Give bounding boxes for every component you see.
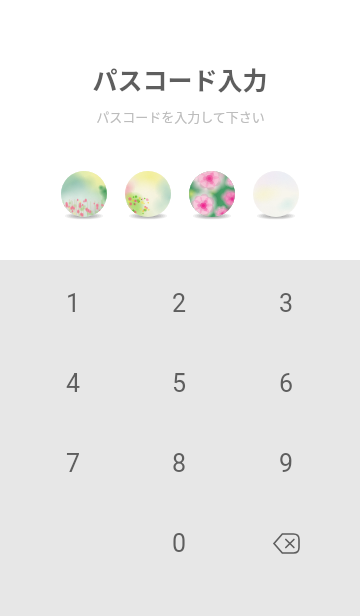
button[interactable]: 6 — [233, 343, 340, 423]
staticText: 9 — [279, 449, 294, 478]
button[interactable]: Backspace — [233, 503, 340, 583]
staticText: パスコード入力 — [92, 61, 268, 97]
button[interactable]: 8 — [126, 423, 233, 503]
staticText: 2 — [172, 289, 187, 318]
staticText: 0 — [172, 529, 187, 558]
staticText: 3 — [279, 289, 294, 318]
staticText: 6 — [279, 369, 294, 398]
staticText: 5 — [172, 369, 187, 398]
staticText: 4 — [66, 369, 81, 398]
button[interactable]: 4 — [20, 343, 126, 423]
button[interactable]: 0 — [126, 503, 233, 583]
staticText: パスコードを入力して下さい — [96, 107, 265, 126]
staticText: 7 — [66, 449, 81, 478]
button[interactable]: 3 — [233, 263, 340, 343]
button[interactable]: 7 — [20, 423, 126, 503]
other: Backspace — [273, 533, 300, 554]
button[interactable]: 2 — [126, 263, 233, 343]
button[interactable]: 9 — [233, 423, 340, 503]
staticText: 1 — [66, 289, 81, 318]
button[interactable]: 1 — [20, 263, 126, 343]
button[interactable]: 5 — [126, 343, 233, 423]
staticText: 8 — [172, 449, 187, 478]
